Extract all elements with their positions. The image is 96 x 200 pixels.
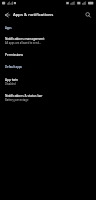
staticText: Apps xyxy=(5,26,12,30)
button[interactable]: Back xyxy=(0,8,13,21)
staticText: Disabled xyxy=(5,82,16,86)
button[interactable]: Permissions xyxy=(0,48,96,61)
button[interactable]: Notifications & status bar xyxy=(0,90,96,104)
button[interactable]: App twin xyxy=(0,74,96,88)
staticText: Battery percentage xyxy=(5,98,29,102)
staticText: Notifications & status bar xyxy=(5,94,43,98)
staticText: Permissions xyxy=(5,53,23,57)
button[interactable]: Search xyxy=(81,8,94,21)
staticText: Default apps xyxy=(5,65,22,69)
button[interactable]: Notifications management xyxy=(0,33,96,47)
staticText: Apps & notifications xyxy=(13,12,54,18)
staticText: All apps are allowed to send… xyxy=(5,41,42,45)
staticText: App twin xyxy=(5,78,19,82)
staticText: Notifications management xyxy=(5,37,45,41)
